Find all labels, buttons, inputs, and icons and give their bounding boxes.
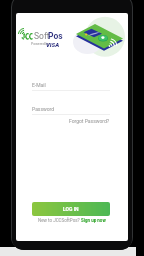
button[interactable]: Sign up now (81, 218, 106, 223)
staticText: New to JCCSoftPos? (38, 218, 81, 223)
staticText: Password (32, 106, 55, 112)
staticText: Soft (34, 31, 50, 41)
staticText: Powered by (31, 42, 50, 46)
staticText: Forgot Password? (69, 118, 110, 124)
staticText: Pos (48, 31, 63, 41)
staticText: LOG IN (63, 206, 79, 212)
button[interactable]: LOG IN (32, 202, 110, 216)
button[interactable]: Forgot Password? (32, 118, 110, 124)
staticText: E-Mail (32, 82, 46, 88)
staticText: VISA (46, 41, 60, 48)
staticText: Sign up now (81, 218, 106, 223)
